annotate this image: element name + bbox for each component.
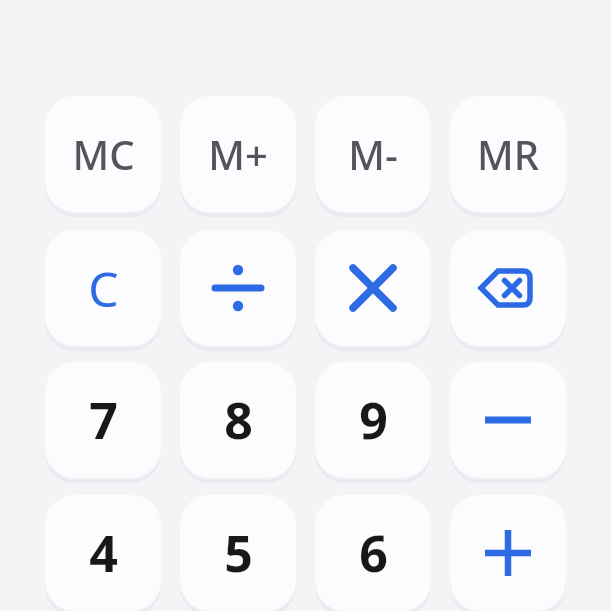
- staticText: MR: [477, 127, 539, 181]
- staticText: 7: [89, 386, 118, 454]
- button[interactable]: M+: [180, 96, 296, 212]
- staticText: 8: [224, 386, 253, 454]
- button[interactable]: 5: [180, 495, 296, 611]
- staticText: C: [88, 256, 119, 321]
- button[interactable]: Multiply: [315, 230, 431, 346]
- staticText: M-: [348, 127, 398, 181]
- button[interactable]: Backspace: [450, 230, 566, 346]
- staticText: 5: [224, 519, 253, 587]
- button[interactable]: Plus: [450, 495, 566, 611]
- button[interactable]: C: [45, 230, 161, 346]
- staticText: 4: [89, 519, 118, 587]
- staticText: M+: [208, 127, 268, 181]
- button[interactable]: 8: [180, 362, 296, 478]
- button[interactable]: 6: [315, 495, 431, 611]
- button[interactable]: Divide: [180, 230, 296, 346]
- button[interactable]: MR: [450, 96, 566, 212]
- button[interactable]: 9: [315, 362, 431, 478]
- staticText: MC: [72, 127, 135, 181]
- button[interactable]: Minus: [450, 362, 566, 478]
- staticText: 6: [359, 519, 388, 587]
- button[interactable]: MC: [45, 96, 161, 212]
- button[interactable]: M-: [315, 96, 431, 212]
- button[interactable]: 4: [45, 495, 161, 611]
- staticText: 9: [359, 386, 388, 454]
- button[interactable]: 7: [45, 362, 161, 478]
